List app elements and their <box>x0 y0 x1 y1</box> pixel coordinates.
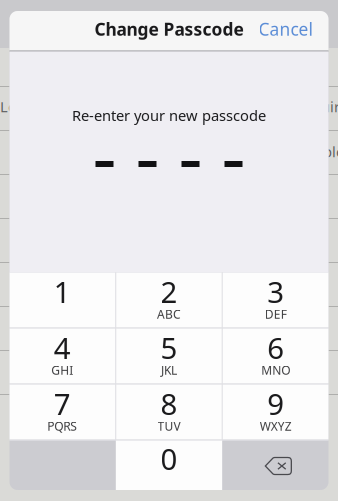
button[interactable]: 2 <box>116 272 222 327</box>
staticText: 9 <box>267 384 284 423</box>
button[interactable]: 0 <box>116 440 222 493</box>
staticText: 5 <box>160 328 177 367</box>
button[interactable]: Cancel <box>258 17 328 40</box>
staticText: 7 <box>54 384 71 423</box>
button[interactable]: 4 <box>9 328 115 383</box>
staticText: 3 <box>267 272 284 311</box>
staticText: PQRS <box>47 418 77 434</box>
staticText: Cancel <box>258 17 312 40</box>
button[interactable]: 6 <box>223 328 328 383</box>
button[interactable]: 3 <box>223 272 328 327</box>
staticText: MNO <box>261 362 290 378</box>
staticText: ABC <box>157 306 181 322</box>
staticText: Simple Passcode <box>297 142 338 161</box>
staticText: Re-enter your new passcode <box>72 105 266 125</box>
button[interactable]: 7 <box>9 384 115 439</box>
staticText: 8 <box>160 384 177 423</box>
button[interactable]: 1 <box>9 272 115 327</box>
button[interactable]: 8 <box>116 384 222 439</box>
button[interactable]: 9 <box>223 384 328 439</box>
staticText: Require Passcode <box>295 97 338 116</box>
staticText: TUV <box>157 418 180 434</box>
staticText: Change Passcode <box>94 17 243 40</box>
button[interactable]: 5 <box>116 328 222 383</box>
staticText: 2 <box>160 272 177 311</box>
staticText: JKL <box>161 362 177 378</box>
staticText: 4 <box>54 328 71 367</box>
staticText: WXYZ <box>260 418 292 434</box>
staticText: 1 <box>54 272 71 311</box>
staticText: DEF <box>265 306 287 322</box>
staticText: Passcode Lock On <box>0 97 56 116</box>
staticText: 0 <box>160 439 177 478</box>
staticText: 6 <box>267 328 284 367</box>
staticText: GHI <box>51 362 73 378</box>
button[interactable]: Delete <box>222 440 328 493</box>
